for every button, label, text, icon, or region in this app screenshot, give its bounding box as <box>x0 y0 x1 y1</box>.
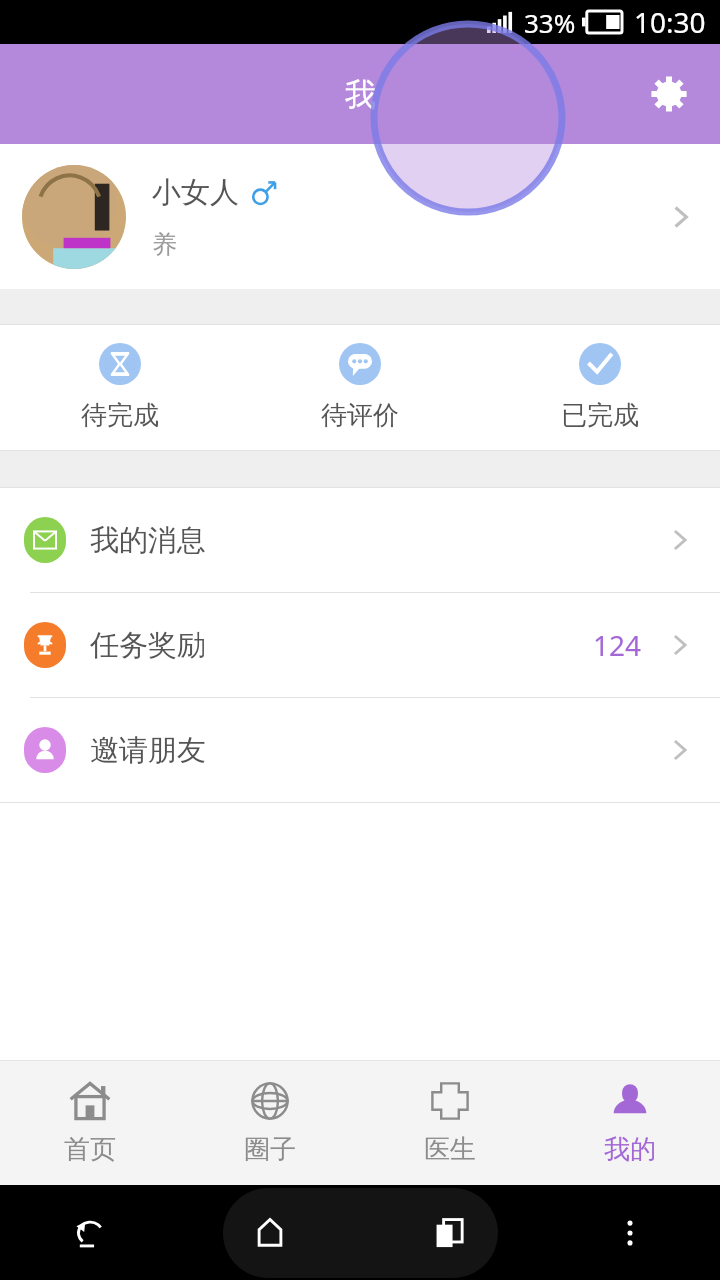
button[interactable]: 圈子 <box>180 1060 360 1185</box>
button[interactable]: 首页 <box>0 1060 180 1185</box>
staticText: 我的 <box>604 1133 656 1166</box>
staticText: 圈子 <box>244 1133 296 1166</box>
button[interactable]: 已完成 <box>480 325 720 450</box>
button[interactable]: 邀请朋友 <box>0 698 720 802</box>
button[interactable]: Back <box>0 1185 180 1280</box>
button[interactable]: 我 <box>345 75 376 114</box>
button[interactable]: 我的消息 <box>0 488 720 592</box>
staticText: 我的消息 <box>90 522 664 559</box>
staticText: 已完成 <box>561 399 639 432</box>
staticText: 待评价 <box>321 399 399 432</box>
button[interactable]: Home <box>180 1185 360 1280</box>
staticText: 养 <box>152 229 177 260</box>
staticText: 医生 <box>424 1133 476 1166</box>
button[interactable]: 医生 <box>360 1060 540 1185</box>
button[interactable]: 任务奖励 <box>0 593 720 697</box>
button[interactable]: More options <box>540 1185 720 1280</box>
button[interactable]: 待完成 <box>0 325 240 450</box>
button[interactable]: 我的 <box>540 1060 720 1185</box>
staticText: 33% <box>524 5 576 40</box>
staticText: 10:30 <box>634 3 706 41</box>
staticText: 小女人 <box>152 174 239 211</box>
staticText: 任务奖励 <box>90 627 593 664</box>
button[interactable]: 待评价 <box>240 325 480 450</box>
staticText: 待完成 <box>81 399 159 432</box>
button[interactable]: Recents <box>360 1185 540 1280</box>
staticText: 首页 <box>64 1133 116 1166</box>
button[interactable]: Settings <box>646 71 692 117</box>
staticText: 124 <box>593 626 642 664</box>
button[interactable]: 小女人 <box>0 144 720 289</box>
staticText: 邀请朋友 <box>90 732 664 769</box>
